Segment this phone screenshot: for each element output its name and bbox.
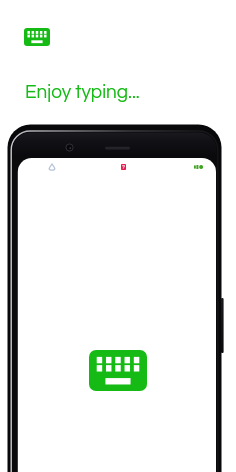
- button[interactable]: Keyboard: [24, 28, 50, 46]
- button[interactable]: Enjoy typing...: [25, 82, 140, 102]
- button[interactable]: Keyboard: [89, 350, 147, 391]
